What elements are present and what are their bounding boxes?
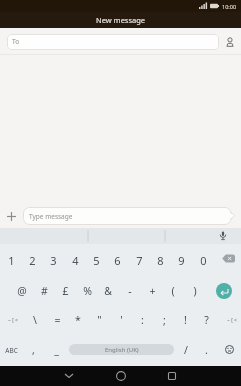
button[interactable]: ' <box>110 312 132 328</box>
button[interactable]: \ <box>24 312 46 328</box>
staticText: / <box>184 343 188 357</box>
button[interactable]: ABC <box>0 342 22 358</box>
button[interactable]: ( <box>162 283 184 299</box>
button[interactable]: % <box>76 283 98 299</box>
staticText: ABC <box>5 346 18 355</box>
button[interactable]: 5 <box>85 252 107 268</box>
staticText: ( <box>171 284 175 298</box>
button[interactable]: 0 <box>192 252 214 268</box>
button[interactable]: 7 <box>128 252 150 268</box>
button[interactable]: = <box>46 312 68 328</box>
button[interactable]: English (UK) <box>69 344 174 355</box>
button[interactable]: New message <box>0 12 241 28</box>
staticText: - <box>128 284 132 298</box>
staticText: 3 <box>50 253 57 268</box>
button[interactable]: " <box>88 312 110 328</box>
staticText: , <box>32 343 35 357</box>
button[interactable]: ? <box>195 312 217 328</box>
button[interactable]: @ <box>11 283 33 299</box>
button[interactable] <box>161 366 182 386</box>
staticText: # <box>41 284 48 298</box>
button[interactable] <box>216 283 232 299</box>
button[interactable]: 8 <box>149 252 171 268</box>
button[interactable]: ~ [ < <box>2 312 24 328</box>
button[interactable] <box>58 366 79 386</box>
staticText: 9 <box>178 253 185 268</box>
staticText: ~ [ < <box>227 317 237 324</box>
button[interactable] <box>215 228 231 244</box>
staticText: 10:00 <box>222 3 237 10</box>
button[interactable] <box>222 342 237 357</box>
button[interactable]: Type message <box>23 207 233 225</box>
button[interactable]: ~ [ < <box>221 312 241 328</box>
staticText: ! <box>184 313 187 327</box>
staticText: @ <box>17 284 27 298</box>
staticText: . <box>205 343 208 357</box>
button[interactable] <box>3 208 19 224</box>
button[interactable] <box>222 33 237 51</box>
staticText: _ <box>54 343 59 357</box>
staticText: 8 <box>157 253 164 268</box>
staticText: ? <box>204 313 209 327</box>
button[interactable]: ; <box>153 312 175 328</box>
button[interactable]: 1 <box>0 252 22 268</box>
staticText: English (UK) <box>105 346 139 354</box>
staticText: New message <box>96 15 146 25</box>
staticText: 0 <box>200 253 207 268</box>
button[interactable]: 6 <box>106 252 128 268</box>
staticText: To <box>12 37 20 46</box>
staticText: & <box>104 284 112 298</box>
staticText: ~ [ < <box>8 317 18 324</box>
button[interactable]: - <box>119 283 141 299</box>
staticText: £ <box>62 284 69 298</box>
staticText: Type message <box>29 212 73 221</box>
button[interactable]: ) <box>184 283 206 299</box>
staticText: 6 <box>114 253 121 268</box>
staticText: = <box>54 313 61 327</box>
button[interactable]: , <box>22 342 44 358</box>
staticText: \ <box>33 313 37 327</box>
staticText: ' <box>120 313 123 327</box>
staticText: % <box>83 284 92 298</box>
staticText: 2 <box>29 253 36 268</box>
button[interactable]: _ <box>45 342 67 358</box>
staticText: * <box>75 313 81 327</box>
button[interactable]: . <box>195 342 217 358</box>
button[interactable]: 2 <box>21 252 43 268</box>
button[interactable]: + <box>141 283 163 299</box>
button[interactable] <box>110 366 131 386</box>
button[interactable]: 3 <box>42 252 64 268</box>
staticText: 1 <box>8 253 15 268</box>
staticText: ) <box>193 284 197 298</box>
button[interactable]: & <box>97 283 119 299</box>
staticText: 4 <box>72 253 79 268</box>
button[interactable]: ! <box>174 312 196 328</box>
button[interactable]: : <box>131 312 153 328</box>
button[interactable]: To <box>7 34 219 50</box>
button[interactable] <box>220 251 237 265</box>
button[interactable]: * <box>67 312 89 328</box>
button[interactable]: 4 <box>64 252 86 268</box>
staticText: : <box>141 313 144 327</box>
button[interactable]: # <box>33 283 55 299</box>
button[interactable]: / <box>175 342 197 358</box>
staticText: " <box>97 313 102 327</box>
staticText: ; <box>163 313 166 327</box>
staticText: + <box>149 284 156 298</box>
staticText: 5 <box>93 253 100 268</box>
button[interactable]: 9 <box>170 252 192 268</box>
button[interactable]: £ <box>54 283 76 299</box>
staticText: 7 <box>136 253 143 268</box>
